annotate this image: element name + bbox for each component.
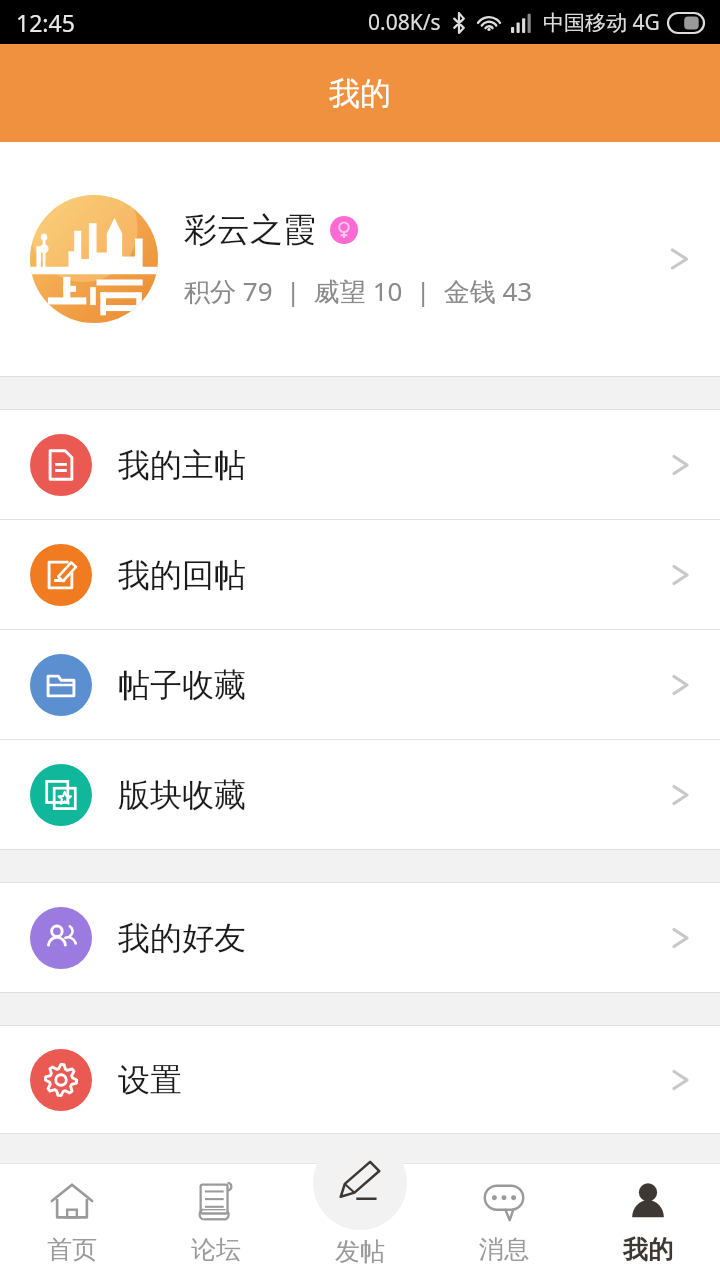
button[interactable]: 首页 — [0, 1163, 144, 1280]
staticText: 发帖 — [335, 1236, 385, 1267]
button[interactable]: 论坛 — [144, 1163, 288, 1280]
staticText: 我的 — [329, 74, 391, 113]
staticText: 设置 — [118, 1060, 670, 1100]
staticText: 首页 — [47, 1234, 97, 1265]
staticText: 版块收藏 — [118, 775, 670, 815]
staticText: 消息 — [479, 1234, 529, 1265]
button[interactable]: 我的好友 — [0, 883, 720, 992]
button[interactable]: 我的主帖 — [0, 410, 720, 519]
button[interactable]: 消息 — [432, 1163, 576, 1280]
staticText: 我的 — [623, 1234, 673, 1265]
staticText: 积分 79 | 威望 10 | 金钱 43 — [184, 273, 533, 309]
button[interactable]: 版块收藏 — [0, 740, 720, 849]
staticText: 我的回帖 — [118, 555, 670, 595]
staticText: 帖子收藏 — [118, 665, 670, 705]
button[interactable]: 发帖 — [313, 1136, 407, 1230]
staticText: 12:45 — [16, 7, 75, 38]
staticText: 0.08K/s — [368, 8, 441, 37]
staticText: 中国移动 4G — [543, 8, 660, 37]
staticText: 彩云之霞 — [184, 209, 316, 251]
staticText: 我的主帖 — [118, 445, 670, 485]
staticText: 我的好友 — [118, 918, 670, 958]
button[interactable]: 我的 — [576, 1163, 720, 1280]
button[interactable]: 我的回帖 — [0, 520, 720, 629]
staticText: 论坛 — [191, 1234, 241, 1265]
button[interactable]: 彩云之霞 — [0, 142, 720, 376]
button[interactable]: 设置 — [0, 1026, 720, 1133]
button[interactable]: 帖子收藏 — [0, 630, 720, 739]
